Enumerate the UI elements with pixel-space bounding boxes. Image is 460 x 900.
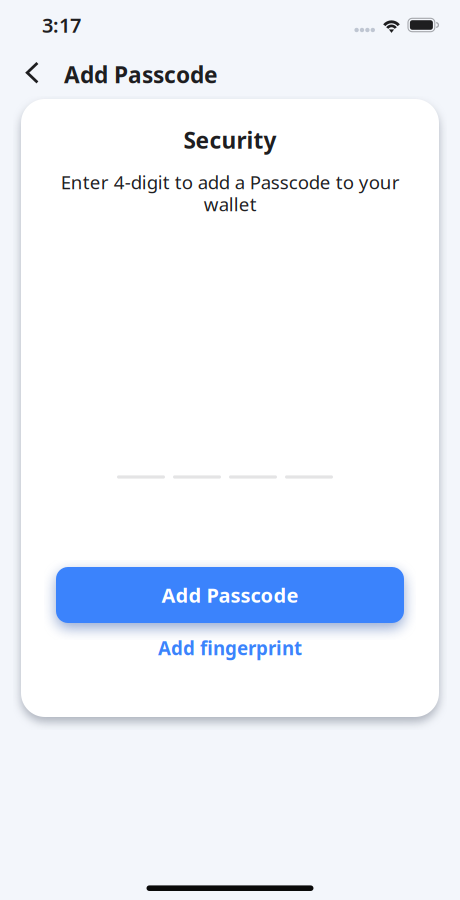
staticText: Security — [183, 125, 276, 155]
staticText: Add Passcode — [161, 582, 298, 608]
button[interactable]: Add Passcode — [56, 567, 404, 623]
staticText: Add fingerprint — [158, 636, 302, 660]
button[interactable]: Add fingerprint — [140, 630, 320, 666]
staticText: 3:17 — [42, 12, 81, 38]
staticText: Add Passcode — [64, 59, 218, 89]
button[interactable]: Back — [14, 55, 51, 93]
staticText: Enter 4-digit to add a Passcode to your … — [60, 170, 399, 216]
